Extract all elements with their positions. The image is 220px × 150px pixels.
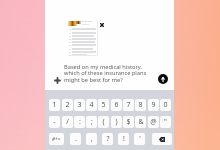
staticText: 3 bbox=[77, 100, 82, 110]
button[interactable]: 6 bbox=[111, 99, 122, 111]
button[interactable]: " bbox=[160, 116, 171, 128]
button[interactable]: ) bbox=[111, 116, 122, 128]
staticText: & bbox=[138, 117, 144, 127]
button[interactable]: 2 bbox=[62, 99, 73, 111]
button[interactable]: . bbox=[70, 133, 81, 145]
button[interactable]: $ bbox=[123, 116, 134, 128]
button[interactable]: 5 bbox=[98, 99, 109, 111]
button[interactable]: ? bbox=[102, 133, 113, 145]
button[interactable]: 7 bbox=[123, 99, 134, 111]
staticText: ( bbox=[102, 117, 105, 127]
button[interactable]: 1 bbox=[49, 99, 60, 111]
staticText: 2 bbox=[65, 100, 70, 110]
staticText: : bbox=[79, 117, 81, 127]
staticText: - bbox=[53, 117, 56, 127]
staticText: 6 bbox=[114, 100, 119, 110]
staticText: 1 bbox=[52, 100, 57, 110]
staticText: 9 bbox=[151, 100, 156, 110]
button[interactable]: ; bbox=[86, 116, 97, 128]
staticText: / bbox=[66, 117, 69, 127]
button[interactable]: Remove attachment bbox=[97, 20, 106, 29]
button[interactable]: 8 bbox=[135, 99, 146, 111]
button[interactable]: - bbox=[49, 116, 60, 128]
staticText: ) bbox=[115, 117, 118, 127]
button[interactable]: #+= bbox=[49, 133, 64, 145]
staticText: ; bbox=[91, 117, 93, 127]
staticText: ! bbox=[123, 134, 125, 144]
staticText: Based on my medical history, which of th… bbox=[64, 63, 147, 84]
button[interactable]: : bbox=[74, 116, 85, 128]
button[interactable]: & bbox=[135, 116, 146, 128]
staticText: @ bbox=[150, 117, 157, 127]
staticText: 7 bbox=[126, 100, 131, 110]
button[interactable]: 4 bbox=[86, 99, 97, 111]
staticText: $ bbox=[126, 117, 131, 127]
button[interactable]: Backspace bbox=[152, 133, 172, 145]
button[interactable]: Attached document bbox=[66, 18, 97, 55]
button[interactable]: @ bbox=[148, 116, 159, 128]
button[interactable]: 9 bbox=[148, 99, 159, 111]
staticText: 5 bbox=[101, 100, 106, 110]
button[interactable]: 3 bbox=[74, 99, 85, 111]
staticText: 0 bbox=[163, 100, 168, 110]
button[interactable]: ' bbox=[134, 133, 145, 145]
button[interactable]: Send bbox=[158, 74, 168, 84]
staticText: #+= bbox=[52, 136, 61, 143]
button[interactable]: ( bbox=[98, 116, 109, 128]
staticText: ? bbox=[106, 134, 110, 144]
button[interactable]: 0 bbox=[160, 99, 171, 111]
staticText: " bbox=[164, 117, 167, 127]
staticText: . bbox=[75, 134, 77, 144]
button[interactable]: , bbox=[86, 133, 97, 145]
button[interactable]: Add attachment bbox=[52, 75, 63, 86]
staticText: , bbox=[91, 134, 93, 144]
staticText: 8 bbox=[138, 100, 143, 110]
staticText: ' bbox=[139, 134, 141, 144]
button[interactable]: ! bbox=[118, 133, 129, 145]
button[interactable]: / bbox=[62, 116, 73, 128]
staticText: 4 bbox=[89, 100, 94, 110]
